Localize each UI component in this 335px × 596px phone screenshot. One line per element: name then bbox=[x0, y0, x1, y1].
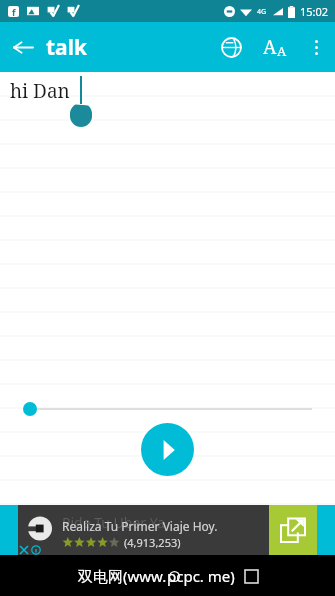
staticText: (4,913,253) bbox=[124, 535, 181, 550]
staticText: 双电网(www. bbox=[78, 566, 167, 586]
button[interactable]: Text size bbox=[253, 25, 297, 69]
staticText: Pide Tu Uber Ya bbox=[62, 513, 165, 532]
button[interactable]: Recents bbox=[245, 570, 258, 583]
staticText: pcpc. me) bbox=[167, 566, 235, 586]
button[interactable]: More options bbox=[297, 28, 335, 66]
staticText: Realiza Tu Primer Viaje Hoy. bbox=[62, 518, 218, 534]
staticText: A bbox=[263, 34, 277, 60]
other: Cursor handle bbox=[70, 103, 92, 125]
button[interactable]: Pide Tu Uber Ya bbox=[18, 505, 269, 555]
staticText: A bbox=[277, 42, 287, 60]
button[interactable]: Translate bbox=[209, 25, 253, 69]
button[interactable]: Play bbox=[141, 423, 194, 476]
button[interactable]: Back bbox=[0, 24, 46, 70]
button[interactable]: Open ad bbox=[269, 505, 317, 555]
staticText: talk bbox=[46, 33, 87, 62]
staticText: hi Dan bbox=[10, 78, 70, 104]
button[interactable] bbox=[0, 389, 335, 429]
staticText: 4G bbox=[257, 7, 267, 17]
staticText: f bbox=[12, 6, 16, 17]
staticText: 15:02 bbox=[300, 4, 329, 19]
